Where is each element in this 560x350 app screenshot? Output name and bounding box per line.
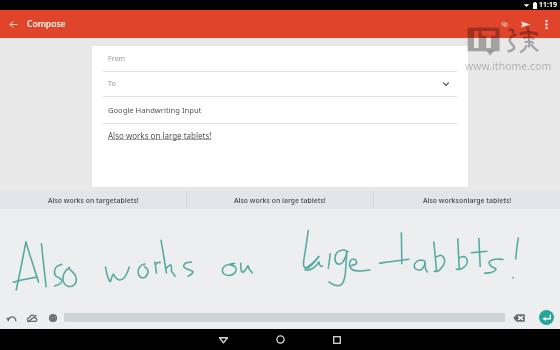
button[interactable]: Home xyxy=(268,329,292,350)
button[interactable]: Offline mode xyxy=(22,306,42,329)
staticText: Compose xyxy=(27,18,66,30)
button[interactable]: Enter xyxy=(532,306,560,329)
staticText: From xyxy=(108,54,126,64)
button[interactable]: Change language xyxy=(42,306,64,329)
staticText: Google Handwriting Input xyxy=(108,105,202,115)
button[interactable]: Back xyxy=(211,329,235,350)
button[interactable]: Also works on targetablets! xyxy=(0,191,186,209)
button[interactable]: Undo xyxy=(0,306,22,329)
staticText: Also worksonlarge tablets! xyxy=(423,196,512,205)
button[interactable]: Recent apps xyxy=(325,329,349,350)
staticText: 11:19 xyxy=(539,0,557,10)
staticText: Also works on large tablets! xyxy=(108,130,212,141)
button[interactable]: Back xyxy=(0,10,27,38)
staticText: Also works on targetablets! xyxy=(48,196,139,205)
staticText: www.ithome.com xyxy=(465,59,552,73)
button[interactable]: More options xyxy=(536,14,557,35)
button[interactable]: Attach file xyxy=(494,14,515,35)
staticText: To xyxy=(108,79,116,89)
button[interactable]: Send xyxy=(515,14,536,35)
staticText: Also works on large tablets! xyxy=(234,196,326,205)
button[interactable]: Also worksonlarge tablets! xyxy=(374,191,560,209)
button[interactable]: Also works on large tablets! xyxy=(187,191,373,209)
button[interactable]: Backspace xyxy=(505,306,532,329)
